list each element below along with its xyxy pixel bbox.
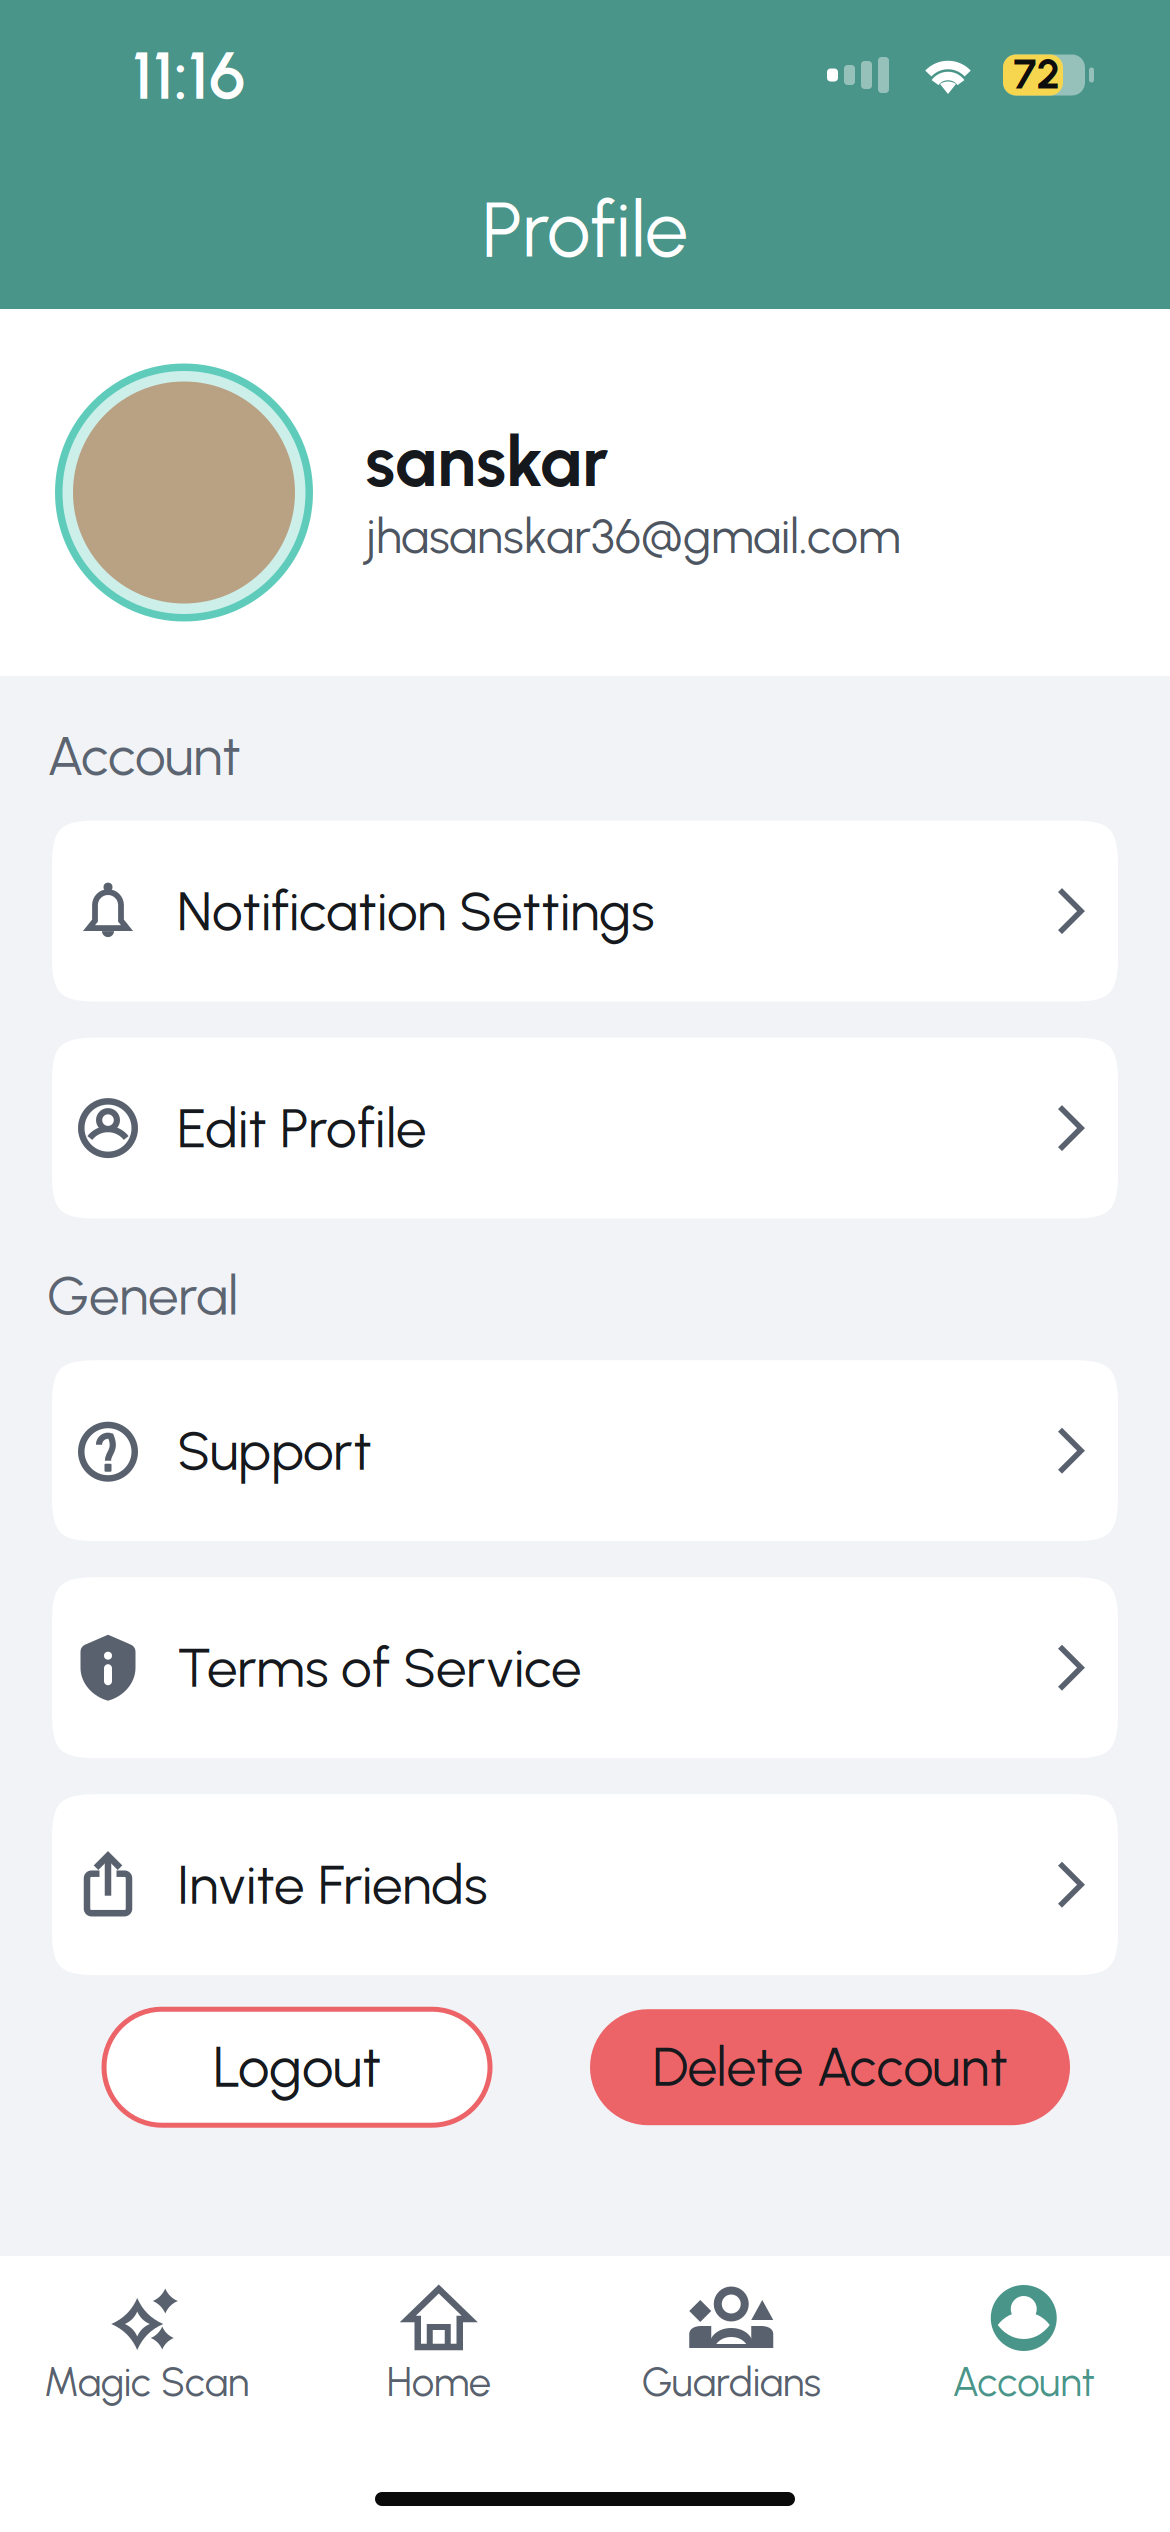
staticText: Support [177,1418,372,1483]
staticText: Notification Settings [177,878,654,944]
staticText: Logout [213,2034,381,2101]
staticText: Magic Scan [44,2358,249,2406]
staticText: sanskar [365,420,609,503]
button[interactable]: Magic Scan [0,2259,292,2429]
staticText: 72 [1013,49,1060,99]
staticText: Home [387,2358,491,2406]
staticText: Edit Profile [177,1095,427,1161]
button[interactable]: Logout [104,2009,490,2125]
button[interactable]: Notification Settings [52,821,1118,1002]
staticText: Delete Account [652,2035,1007,2099]
staticText: Terms of Service [177,1635,582,1700]
button[interactable]: Invite Friends [52,1794,1118,1975]
button[interactable]: Terms of Service [52,1577,1118,1758]
staticText: Account [952,2358,1095,2406]
button[interactable]: Account [877,2259,1170,2429]
staticText: Invite Friends [177,1852,487,1917]
button[interactable]: Edit Profile [52,1038,1118,1219]
button[interactable]: Guardians [585,2259,877,2429]
button[interactable]: Delete Account [590,2009,1070,2125]
staticText: Profile [482,183,688,276]
staticText: Guardians [642,2358,821,2406]
staticText: Account [47,723,241,789]
staticText: 11:16 [132,35,245,115]
staticText: jhasanskar36@gmail.com [365,507,901,565]
button[interactable]: Support [52,1360,1118,1541]
staticText: General [47,1263,238,1328]
button[interactable]: Home [292,2259,585,2429]
